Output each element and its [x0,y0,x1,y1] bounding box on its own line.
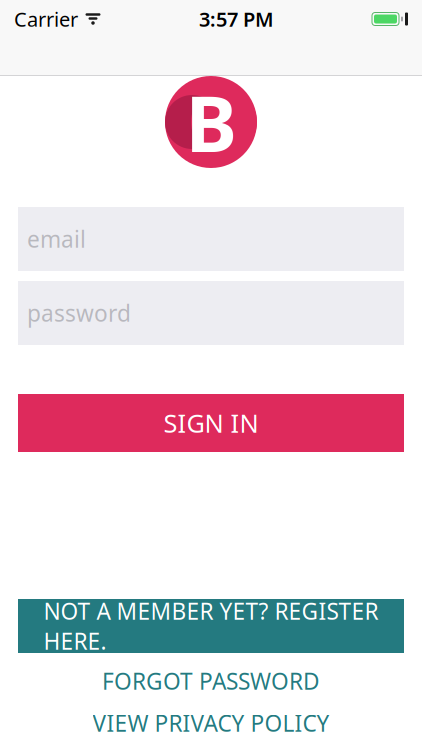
staticText: SIGN IN [163,406,258,440]
button[interactable]: SIGN IN [18,394,404,452]
button[interactable]: VIEW PRIVACY POLICY [18,708,404,738]
button[interactable]: FORGOT PASSWORD [18,666,404,696]
staticText: VIEW PRIVACY POLICY [92,708,329,738]
staticText: FORGOT PASSWORD [102,666,320,696]
button[interactable]: NOT A MEMBER YET? REGISTER HERE. [18,599,404,653]
staticText: NOT A MEMBER YET? REGISTER HERE. [43,596,378,656]
staticText: 3:57 PM [199,6,274,32]
staticText: B [185,71,236,173]
staticText: password [27,298,131,328]
staticText: Carrier [14,6,78,32]
staticText: email [27,224,86,254]
